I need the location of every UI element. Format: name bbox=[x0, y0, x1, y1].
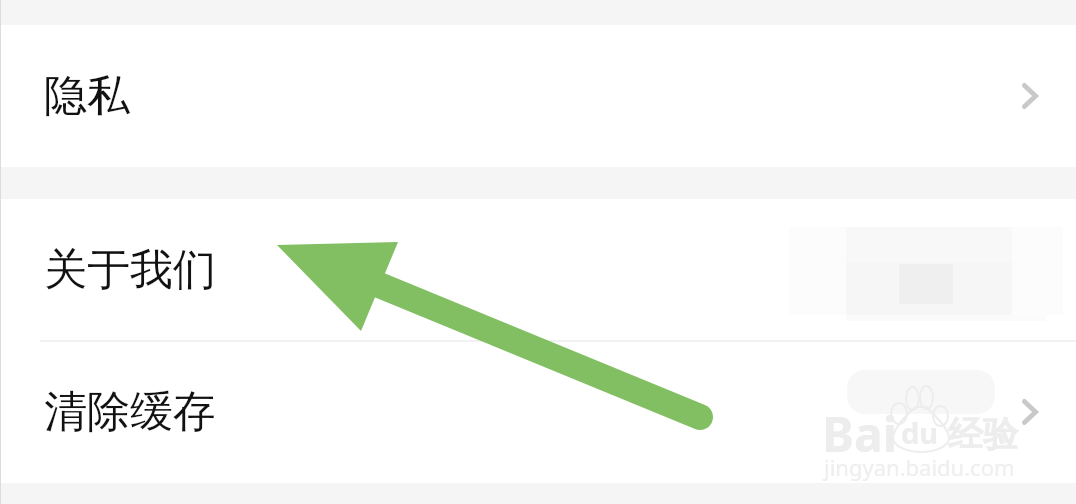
staticText: jingyan.baidu.com bbox=[824, 452, 1015, 482]
staticText: Bai bbox=[822, 401, 898, 466]
staticText: 经验 bbox=[948, 412, 1018, 456]
staticText: 隐私 bbox=[44, 69, 130, 123]
staticText: 清除缓存 bbox=[44, 385, 216, 439]
staticText: 关于我们 bbox=[44, 243, 216, 297]
other: Open bbox=[1022, 83, 1038, 109]
staticText: du bbox=[901, 413, 939, 452]
other: Open bbox=[1022, 399, 1038, 425]
button[interactable]: 关于我们 bbox=[0, 199, 1076, 340]
button[interactable]: 清除缓存 bbox=[0, 340, 1076, 483]
button[interactable]: 隐私 bbox=[0, 25, 1076, 167]
